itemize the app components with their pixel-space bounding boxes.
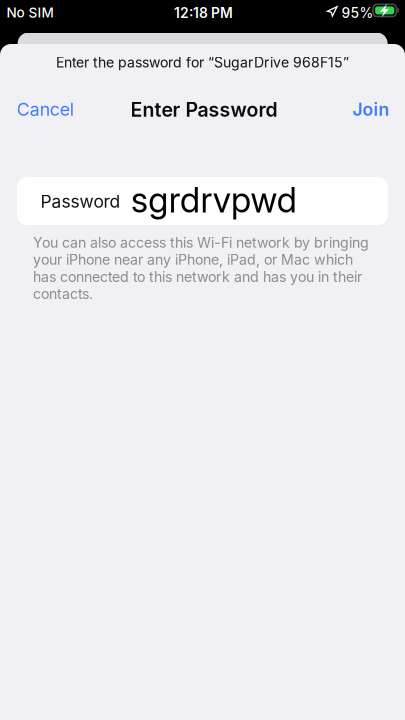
staticText: sgrdrvpwd xyxy=(131,179,297,221)
staticText: No SIM xyxy=(6,4,53,21)
button[interactable]: Cancel xyxy=(8,89,83,129)
staticText: Enter the password for “SugarDrive 968F1… xyxy=(56,54,349,71)
staticText: You can also access this Wi-Fi network b… xyxy=(33,234,369,302)
button[interactable]: Password xyxy=(17,177,388,225)
staticText: Enter Password xyxy=(130,98,277,121)
staticText: Cancel xyxy=(17,98,74,120)
staticText: 95% xyxy=(341,4,373,21)
staticText: Password xyxy=(40,191,120,212)
staticText: Join xyxy=(352,98,389,120)
staticText: 12:18 PM xyxy=(174,4,233,21)
button[interactable]: Join xyxy=(343,89,398,129)
